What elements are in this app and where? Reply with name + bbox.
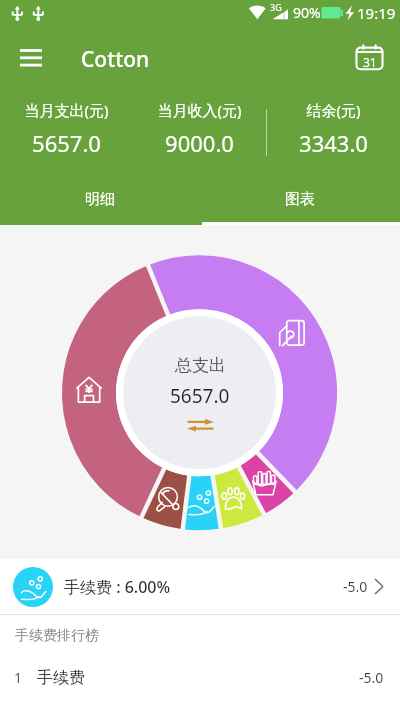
staticText: 手续费排行榜 bbox=[15, 627, 99, 645]
staticText: 明细 bbox=[85, 190, 115, 209]
staticText: 5657.0 bbox=[32, 128, 101, 158]
staticText: -5.0 bbox=[343, 577, 368, 596]
staticText: 31 bbox=[363, 54, 377, 70]
staticText: 结余(元) bbox=[306, 100, 361, 120]
button[interactable]: 手续费 : 6.00% bbox=[0, 559, 400, 614]
staticText: -5.0 bbox=[359, 668, 384, 687]
staticText: 图表 bbox=[285, 190, 315, 209]
button[interactable]: Menu bbox=[9, 35, 53, 79]
staticText: 总支出 bbox=[175, 355, 226, 376]
staticText: Cotton bbox=[81, 45, 150, 74]
staticText: 手续费 : 6.00% bbox=[64, 576, 171, 598]
other: Details bbox=[374, 578, 384, 595]
staticText: 90% bbox=[293, 3, 321, 22]
button[interactable]: Calendar bbox=[347, 35, 391, 79]
staticText: 19:19 bbox=[357, 3, 396, 23]
staticText: 3G bbox=[270, 1, 282, 13]
staticText: 当月收入(元) bbox=[157, 100, 242, 120]
button[interactable]: 明细 bbox=[0, 177, 200, 225]
button[interactable]: 1 bbox=[0, 655, 400, 700]
staticText: 3343.0 bbox=[299, 128, 368, 158]
staticText: 手续费 bbox=[37, 668, 85, 688]
button[interactable]: 图表 bbox=[200, 177, 400, 225]
staticText: 9000.0 bbox=[165, 128, 234, 158]
staticText: 5657.0 bbox=[170, 383, 230, 405]
staticText: 当月支出(元) bbox=[24, 100, 109, 120]
staticText: 1 bbox=[14, 668, 23, 687]
